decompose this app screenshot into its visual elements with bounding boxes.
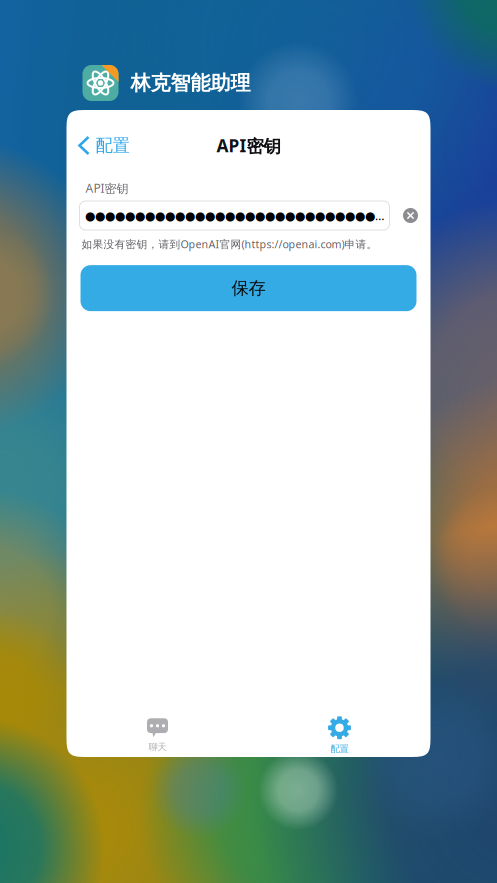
button[interactable]: 配置 [248, 705, 430, 757]
button[interactable]: Clear [397, 202, 423, 228]
staticText: 林克智能助理 [130, 71, 250, 95]
staticText: 保存 [231, 277, 265, 299]
staticText: 如果没有密钥，请到OpenAI官网(https://openai.com)申请。 [81, 237, 377, 251]
staticText: 配置 [330, 743, 348, 755]
staticText: API密钥 [216, 134, 280, 157]
staticText: API密钥 [85, 180, 128, 196]
button[interactable]: 配置 [66, 123, 139, 167]
staticText: ●●●●●●●●●●●●●●●●●●●●●●●●●●●●●… [85, 207, 384, 223]
staticText: 配置 [95, 135, 129, 156]
button[interactable]: 保存 [80, 265, 416, 311]
staticText: 聊天 [148, 741, 166, 753]
button[interactable]: 聊天 [66, 705, 248, 757]
